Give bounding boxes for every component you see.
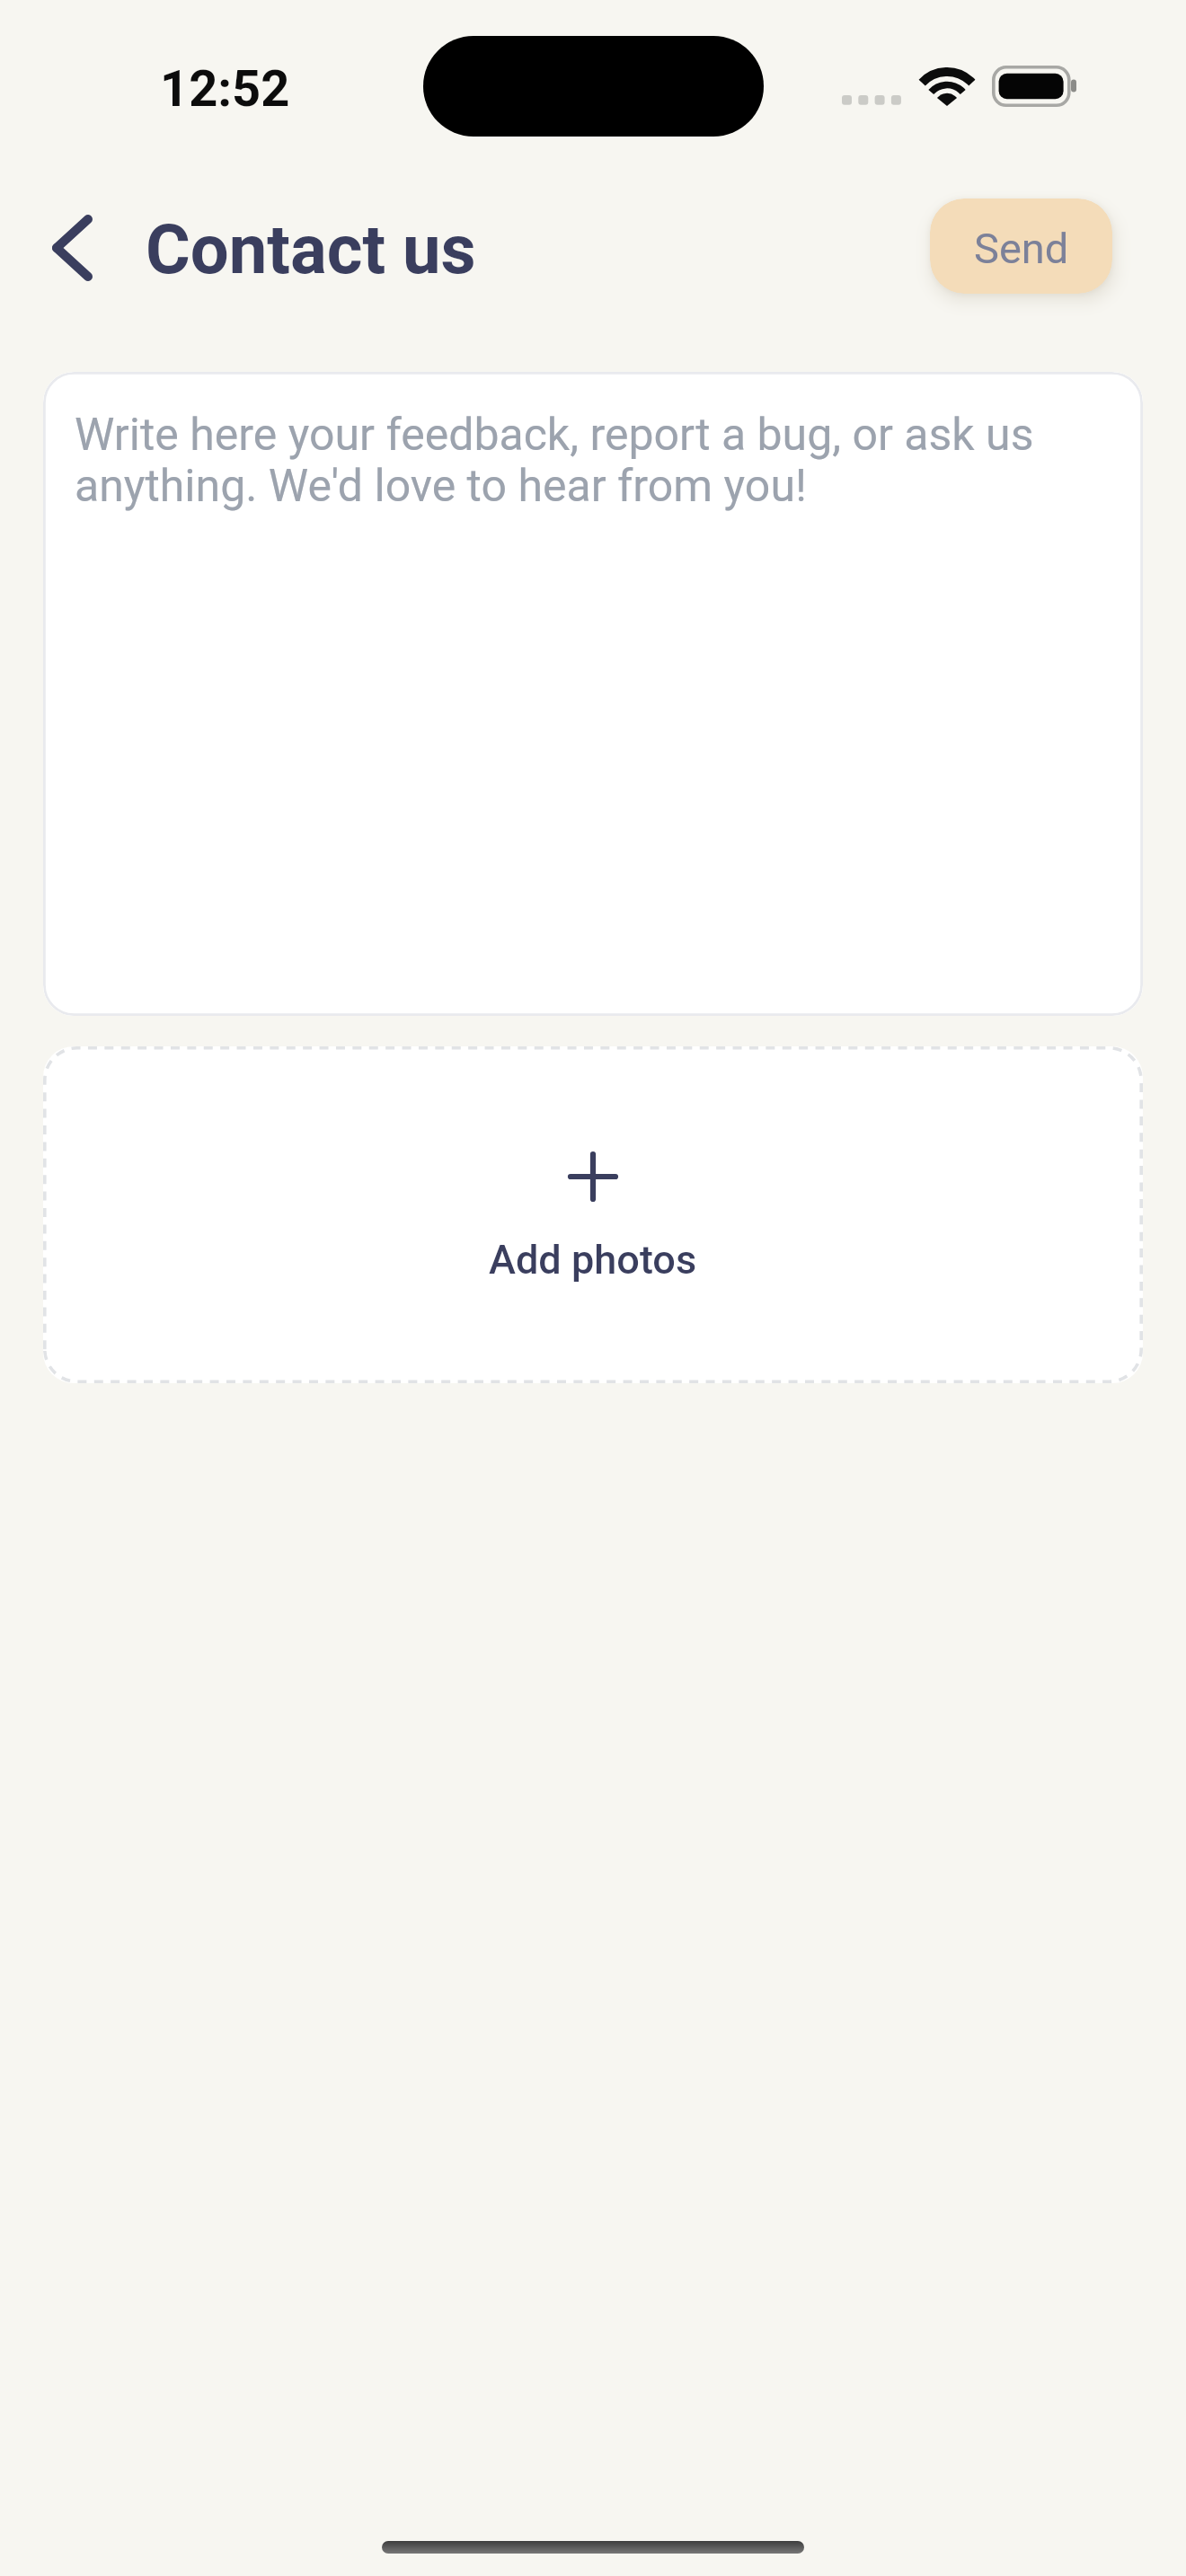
- button[interactable]: Send: [930, 198, 1112, 294]
- staticText: Write here your feedback, report a bug, …: [75, 409, 1120, 512]
- staticText: Contact us: [146, 209, 476, 289]
- button[interactable]: Add photos: [43, 1046, 1143, 1383]
- staticText: Add photos: [489, 1236, 697, 1284]
- button[interactable]: Write here your feedback, report a bug, …: [43, 372, 1143, 1016]
- button[interactable]: Back: [38, 208, 117, 287]
- staticText: Send: [974, 224, 1069, 273]
- staticText: 12:52: [160, 59, 290, 119]
